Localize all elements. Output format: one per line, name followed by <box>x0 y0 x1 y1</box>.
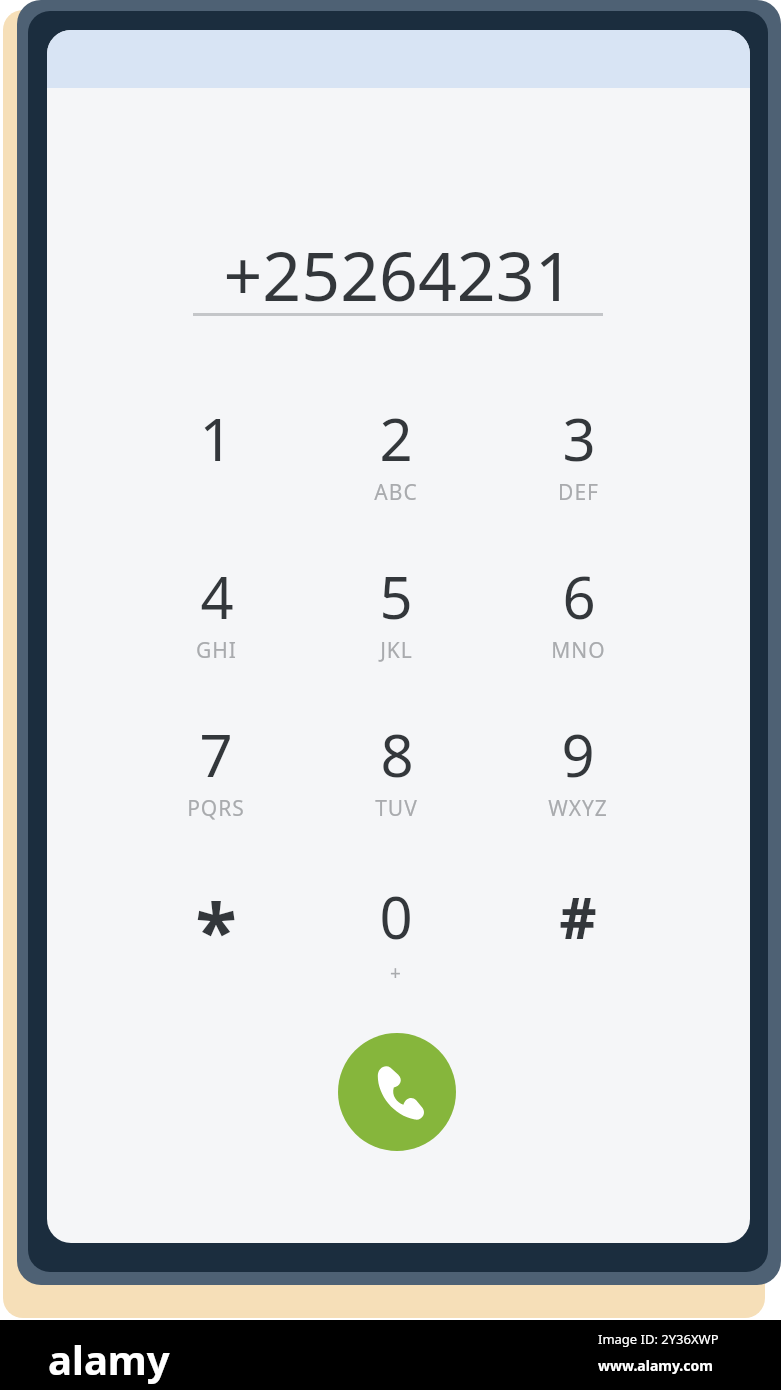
staticText: DEF <box>558 478 599 507</box>
staticText: ABC <box>374 478 418 507</box>
staticText: 9 <box>561 715 595 794</box>
button[interactable]: * <box>141 877 291 995</box>
button[interactable]: 2 <box>321 399 471 517</box>
button[interactable]: 0 <box>321 877 471 995</box>
staticText: * <box>195 877 237 981</box>
staticText: GHI <box>196 636 237 665</box>
staticText: 0 <box>379 877 413 956</box>
staticText: alamy <box>48 1332 170 1386</box>
button[interactable]: 8 <box>321 715 471 833</box>
staticText: +25264231 <box>47 228 750 321</box>
button[interactable]: 6 <box>503 557 653 675</box>
staticText: 5 <box>379 557 413 636</box>
staticText: 6 <box>562 557 596 636</box>
staticText: 7 <box>199 715 233 794</box>
staticText: PQRS <box>187 794 245 823</box>
staticText: JKL <box>380 636 413 665</box>
staticText: # <box>559 877 597 956</box>
staticText: WXYZ <box>548 794 608 823</box>
button[interactable]: 7 <box>141 715 291 833</box>
button[interactable]: 9 <box>503 715 653 833</box>
staticText: TUV <box>375 794 418 823</box>
button[interactable]: 3 <box>503 399 653 517</box>
staticText: Image ID: 2Y36XWP <box>598 1330 719 1348</box>
staticText: 1 <box>199 399 233 478</box>
staticText: + <box>390 960 402 986</box>
staticText: 8 <box>380 715 414 794</box>
button[interactable]: Call <box>338 1033 456 1151</box>
button[interactable]: # <box>503 877 653 995</box>
staticText: 3 <box>562 399 596 478</box>
staticText: 4 <box>200 557 234 636</box>
staticText: www.alamy.com <box>598 1356 713 1375</box>
button[interactable]: 1 <box>141 399 291 517</box>
staticText: 2 <box>379 399 413 478</box>
button[interactable]: 4 <box>141 557 291 675</box>
staticText: MNO <box>551 636 606 665</box>
button[interactable]: 5 <box>321 557 471 675</box>
